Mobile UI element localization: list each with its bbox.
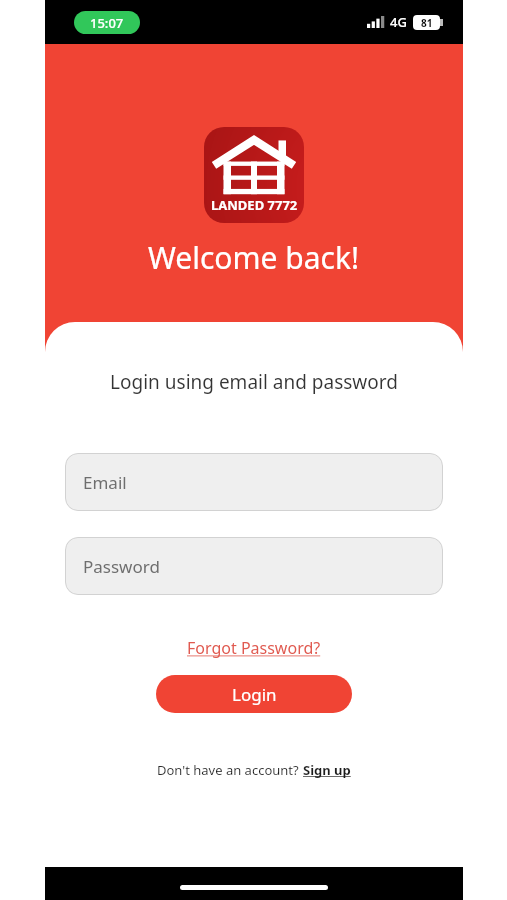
staticText: 81 [421,16,433,30]
button[interactable]: Email [65,453,443,511]
staticText: Welcome back! [148,237,360,278]
staticText: Login using email and password [110,369,398,395]
button[interactable]: Login [156,675,352,713]
button[interactable]: Password [65,537,443,595]
staticText: Don't have an account? [157,761,303,779]
staticText: LANDED 7772 [211,196,298,214]
button[interactable]: Don't have an account? [153,757,355,783]
staticText: Email [83,471,127,494]
staticText: Sign up [303,761,351,779]
staticText: Forgot Password? [187,637,321,659]
button[interactable]: Forgot Password? [181,633,327,663]
staticText: Login [232,683,277,706]
staticText: Password [83,555,160,578]
staticText: 4G [390,13,407,31]
staticText: 15:07 [90,14,124,32]
